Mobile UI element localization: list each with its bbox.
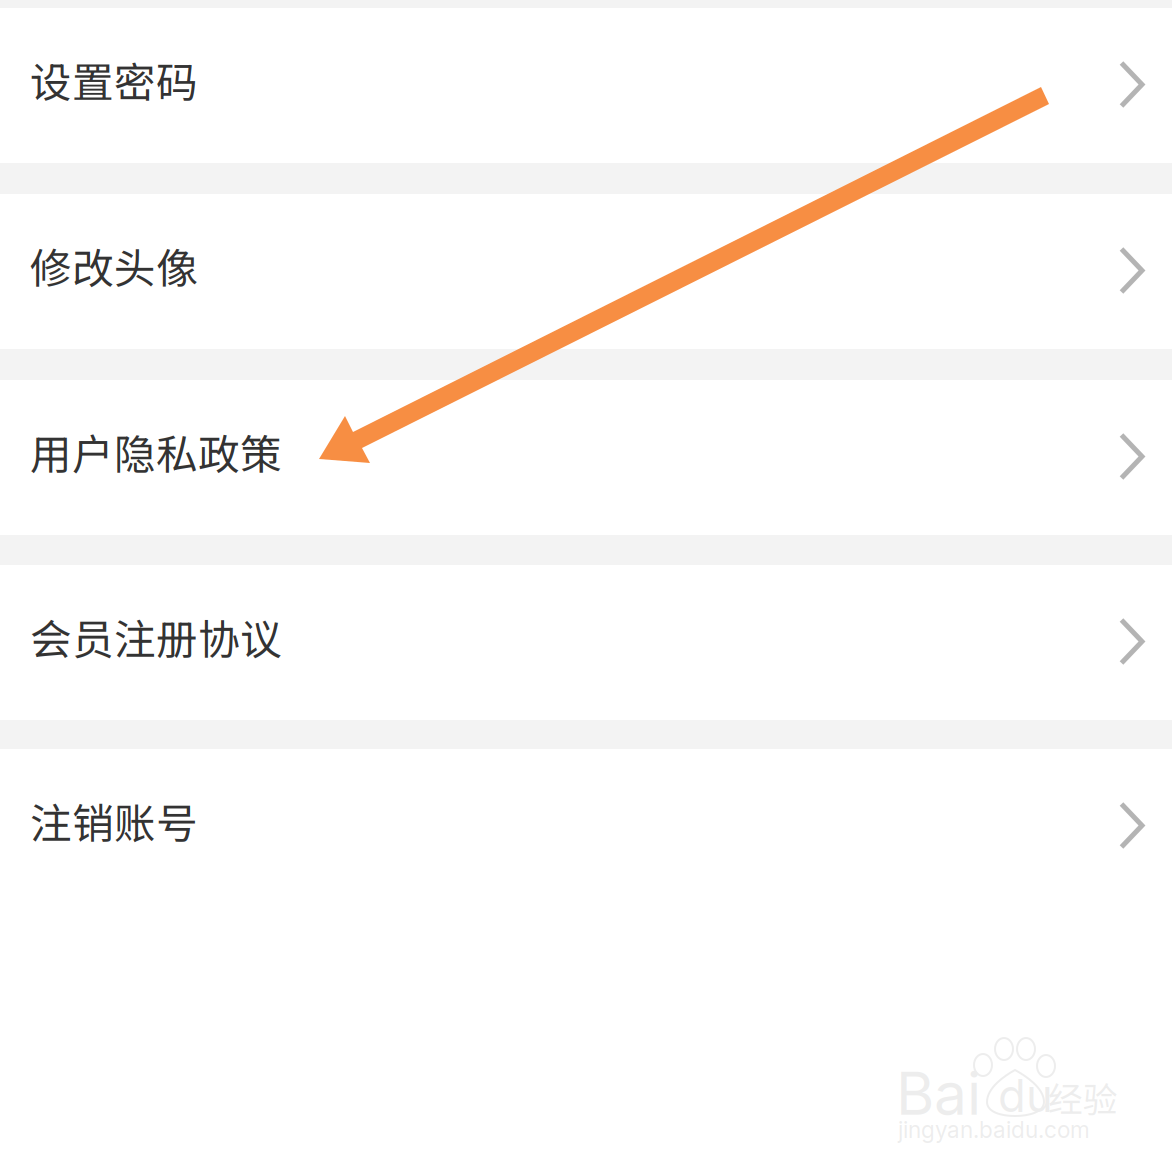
- button[interactable]: 会员注册协议: [0, 565, 1172, 720]
- button[interactable]: 修改头像: [0, 194, 1172, 349]
- button[interactable]: 注销账号: [0, 749, 1172, 904]
- button[interactable]: 设置密码: [0, 8, 1172, 163]
- staticText: 设置密码: [30, 49, 198, 110]
- button[interactable]: 用户隐私政策: [0, 380, 1172, 535]
- staticText: 用户隐私政策: [30, 421, 282, 482]
- staticText: 修改头像: [30, 235, 198, 296]
- staticText: 会员注册协议: [30, 606, 282, 667]
- staticText: 注销账号: [30, 790, 198, 851]
